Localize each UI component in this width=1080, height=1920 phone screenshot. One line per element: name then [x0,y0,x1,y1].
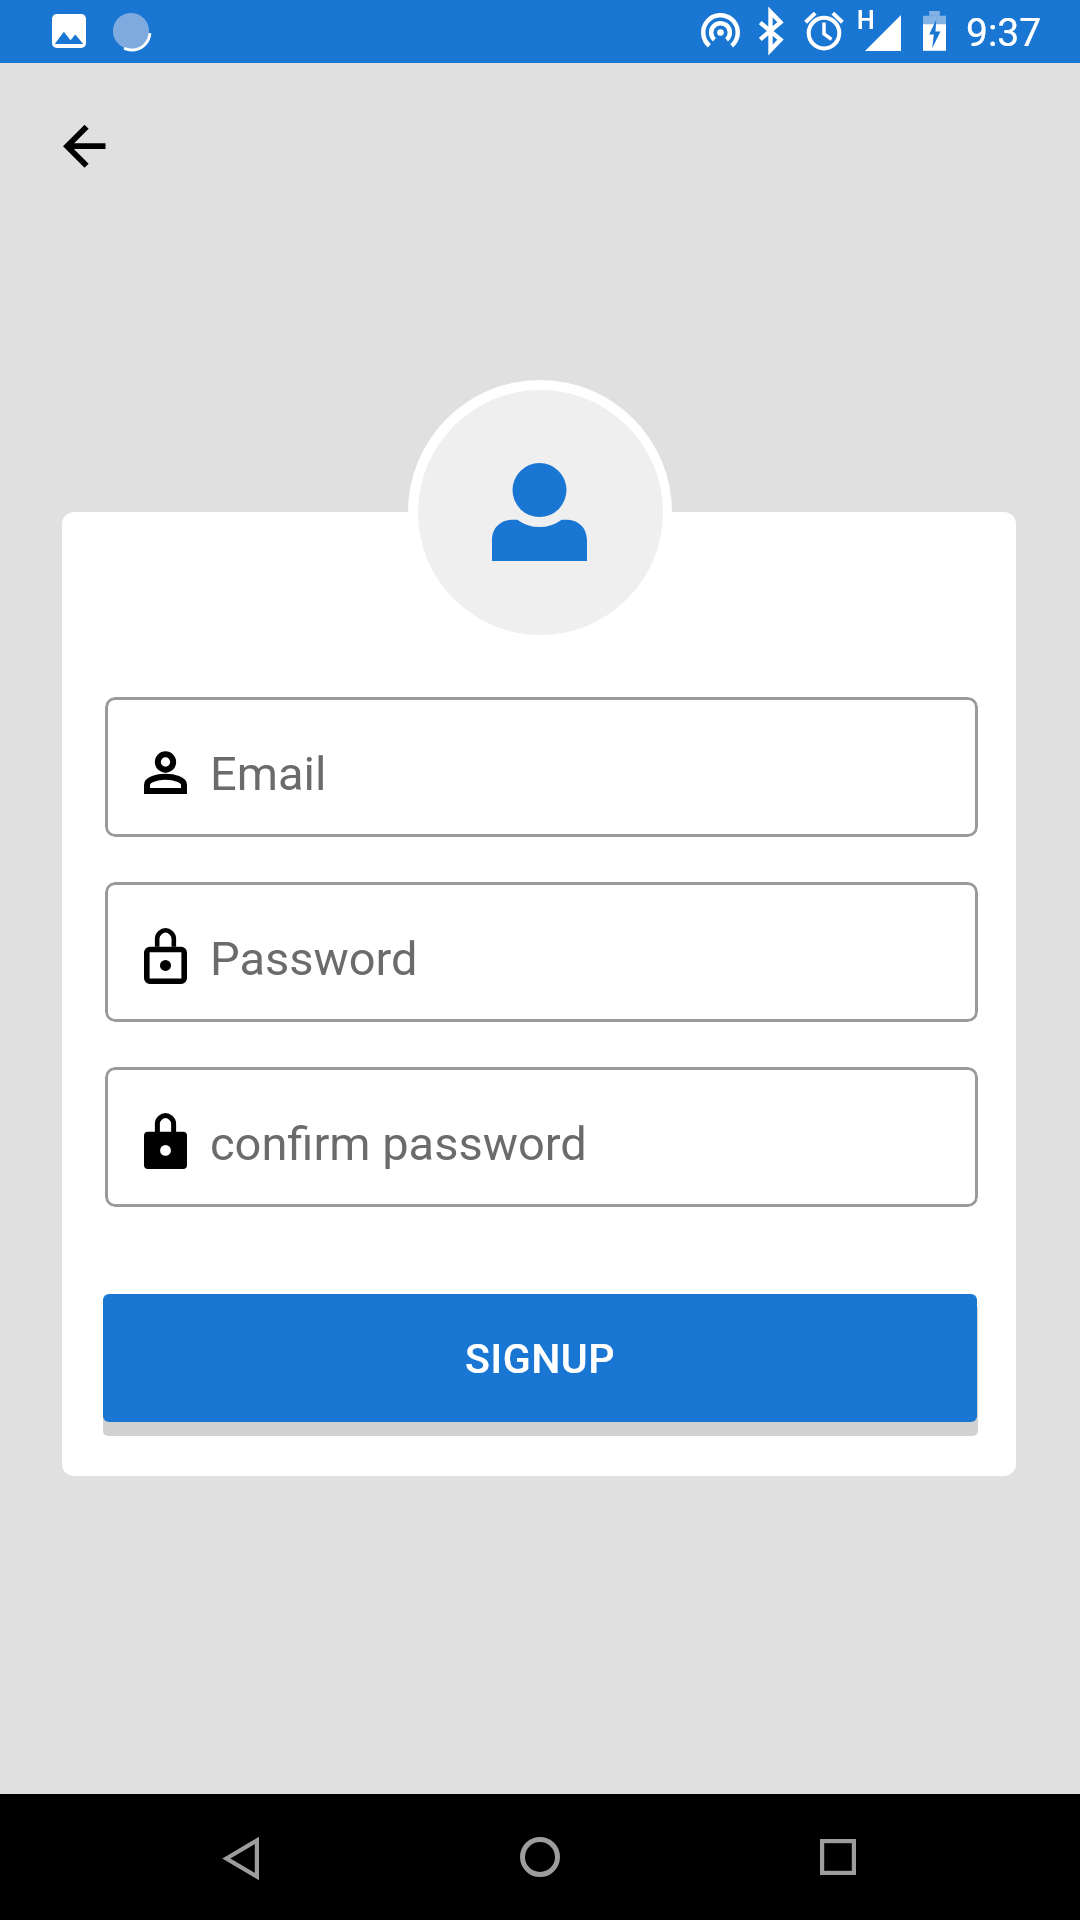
staticText: Password [210,931,418,986]
staticText: Email [210,746,327,801]
staticText: SIGNUP [465,1335,616,1383]
staticText: confirm password [210,1116,587,1171]
button[interactable]: Recent apps [778,1797,898,1917]
button[interactable]: Back [34,104,134,188]
button[interactable]: Password [105,882,978,1022]
button[interactable]: Email [105,697,978,837]
button[interactable]: confirm password [105,1067,978,1207]
staticText: H [857,6,875,35]
button[interactable]: SIGNUP [103,1294,977,1422]
button[interactable]: Back [182,1798,302,1918]
staticText: 9:37 [966,10,1042,56]
button[interactable]: Home [480,1797,600,1917]
